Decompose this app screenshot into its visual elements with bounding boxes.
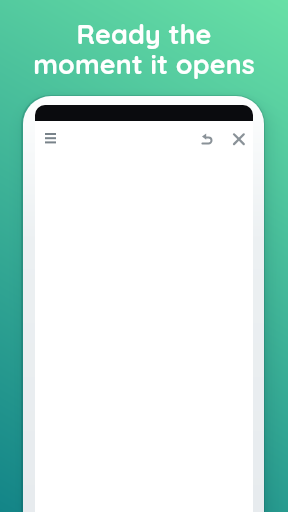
button[interactable] — [45, 133, 56, 143]
staticText: Ready the moment it opens — [0, 17, 288, 81]
button[interactable] — [233, 133, 245, 146]
button[interactable] — [202, 133, 213, 146]
